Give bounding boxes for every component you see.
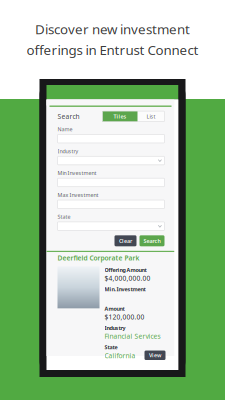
staticText: Min Investment [57, 169, 96, 177]
staticText: View [149, 352, 161, 359]
staticText: $120,000.00 [104, 312, 144, 321]
staticText: State [57, 213, 70, 220]
button[interactable]: List [137, 111, 164, 122]
staticText: Search [57, 112, 79, 121]
staticText: Min. Investment [104, 286, 145, 293]
staticText: Industry [57, 148, 78, 155]
button[interactable]: View [144, 350, 165, 360]
staticText: Deerfield Corporate Park [57, 253, 139, 262]
staticText: Offering Amount [104, 266, 146, 273]
staticText: Clear [119, 237, 132, 244]
staticText: $4,000,000.00 [104, 274, 150, 283]
staticText: Financial Services [104, 332, 160, 341]
staticText: List [146, 113, 155, 120]
button[interactable]: Search [139, 235, 164, 246]
staticText: Amount [104, 305, 124, 312]
staticText: California [104, 351, 135, 360]
staticText: Search [143, 237, 160, 244]
staticText: Max Investment [57, 191, 98, 198]
button[interactable]: Clear [114, 235, 136, 246]
button[interactable]: Tiles [102, 111, 137, 122]
staticText: offerings in Entrust Connect [26, 41, 198, 59]
staticText: State [104, 344, 117, 351]
staticText: Discover new investment [35, 20, 190, 38]
staticText: Industry [104, 324, 125, 331]
staticText: Tiles [113, 113, 126, 120]
staticText: Name [57, 126, 72, 133]
